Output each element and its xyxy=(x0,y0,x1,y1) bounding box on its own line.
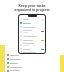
button[interactable] xyxy=(19,29,45,34)
button[interactable] xyxy=(5,57,60,61)
button[interactable] xyxy=(19,38,45,42)
button[interactable] xyxy=(5,69,60,72)
button[interactable] xyxy=(19,51,45,53)
button[interactable] xyxy=(19,25,45,29)
staticText: Keep your tasks organized in projects xyxy=(2,3,62,12)
button[interactable] xyxy=(19,47,45,51)
button[interactable]: Search xyxy=(42,19,44,21)
button[interactable] xyxy=(5,53,60,57)
button[interactable] xyxy=(5,61,60,65)
button[interactable] xyxy=(19,34,45,38)
button[interactable] xyxy=(19,42,45,47)
button[interactable] xyxy=(5,65,60,69)
